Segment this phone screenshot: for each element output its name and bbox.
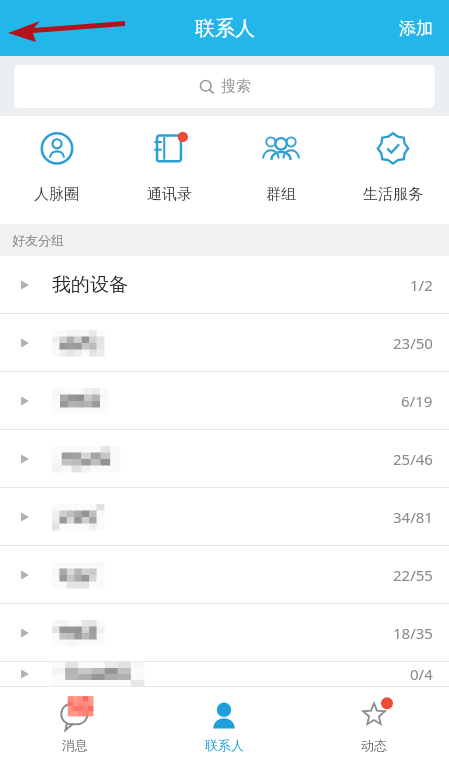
button[interactable]: 生活服务 — [337, 116, 449, 224]
button[interactable]: 通讯录 — [113, 116, 225, 224]
staticText: 22/55 — [393, 565, 433, 585]
staticText: 18/35 — [393, 623, 433, 643]
button[interactable]: 消息 — [0, 687, 149, 765]
button[interactable]: 25/46 — [0, 430, 449, 487]
staticText: 23/50 — [393, 333, 433, 353]
staticText: 通讯录 — [147, 185, 192, 204]
staticText: 1/2 — [410, 275, 433, 295]
staticText: 生活服务 — [363, 185, 423, 204]
staticText: 我的设备 — [52, 273, 128, 297]
staticText: 搜索 — [221, 77, 251, 96]
staticText: 好友分组 — [12, 232, 64, 248]
button[interactable]: 我的设备 — [0, 256, 449, 313]
button[interactable]: 搜索 — [14, 65, 435, 108]
button[interactable]: 0/4 — [0, 662, 449, 686]
staticText: 人脉圈 — [34, 185, 79, 204]
staticText: 34/81 — [393, 507, 433, 527]
staticText: 25/46 — [393, 449, 433, 469]
button[interactable]: 34/81 — [0, 488, 449, 545]
staticText: 6/19 — [401, 391, 433, 411]
button[interactable]: 18/35 — [0, 604, 449, 661]
button[interactable]: 群组 — [225, 116, 337, 224]
staticText: 消息 — [62, 737, 88, 753]
staticText: 联系人 — [205, 737, 244, 753]
button[interactable]: 联系人 — [149, 687, 299, 765]
staticText: 联系人 — [195, 16, 255, 41]
staticText: 添加 — [399, 18, 433, 39]
staticText: 群组 — [266, 185, 296, 204]
button[interactable]: 人脉圈 — [0, 116, 113, 224]
button[interactable]: 添加 — [383, 6, 449, 51]
staticText: 0/4 — [410, 664, 433, 684]
button[interactable]: 23/50 — [0, 314, 449, 371]
button[interactable]: 22/55 — [0, 546, 449, 603]
button[interactable]: 动态 — [299, 687, 449, 765]
staticText: 动态 — [361, 737, 387, 753]
button[interactable]: 6/19 — [0, 372, 449, 429]
